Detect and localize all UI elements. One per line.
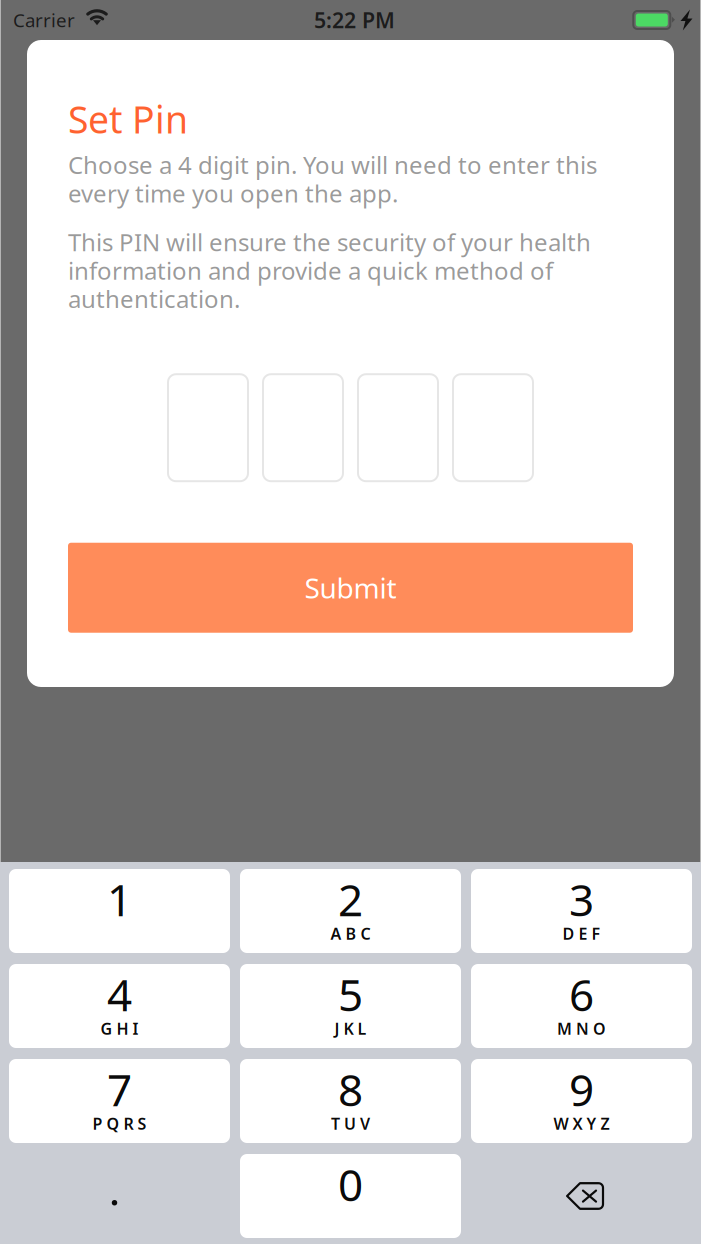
staticText: PQRS [92, 1113, 146, 1134]
button[interactable]: Decimal point [9, 1154, 230, 1238]
staticText: 2 [338, 870, 363, 928]
staticText: 5:22 PM [314, 6, 395, 34]
staticText: Carrier [13, 8, 75, 32]
staticText: This PIN will ensure the security of you… [68, 226, 591, 315]
button[interactable]: Submit [68, 543, 633, 633]
staticText: 4 [107, 965, 132, 1023]
staticText: GHI [100, 1018, 138, 1039]
button[interactable]: 8 [240, 1059, 461, 1143]
staticText: 3 [569, 870, 594, 928]
button[interactable]: 6 [471, 964, 692, 1048]
staticText: TUV [331, 1113, 370, 1134]
button[interactable]: 3 [471, 869, 692, 953]
button[interactable]: 9 [471, 1059, 692, 1143]
button[interactable]: 0 [240, 1154, 461, 1238]
staticText: ABC [330, 923, 370, 944]
staticText: Set Pin [68, 94, 188, 144]
staticText: 5 [338, 965, 363, 1023]
staticText: JKL [334, 1018, 366, 1039]
button[interactable]: 5 [240, 964, 461, 1048]
staticText: 0 [338, 1155, 363, 1213]
staticText: WXYZ [553, 1113, 609, 1134]
staticText: MNO [557, 1018, 606, 1039]
staticText: DEF [562, 923, 600, 944]
button[interactable]: 4 [9, 964, 230, 1048]
staticText: Submit [304, 569, 396, 606]
staticText: 1 [107, 870, 132, 928]
staticText: Choose a 4 digit pin. You will need to e… [68, 149, 597, 209]
button[interactable]: 2 [240, 869, 461, 953]
staticText: 8 [338, 1060, 363, 1118]
button[interactable]: Delete [471, 1154, 692, 1238]
staticText: 7 [107, 1060, 132, 1118]
staticText: 9 [569, 1060, 594, 1118]
button[interactable]: 1 [9, 869, 230, 953]
staticText: 6 [569, 965, 594, 1023]
button[interactable]: 7 [9, 1059, 230, 1143]
